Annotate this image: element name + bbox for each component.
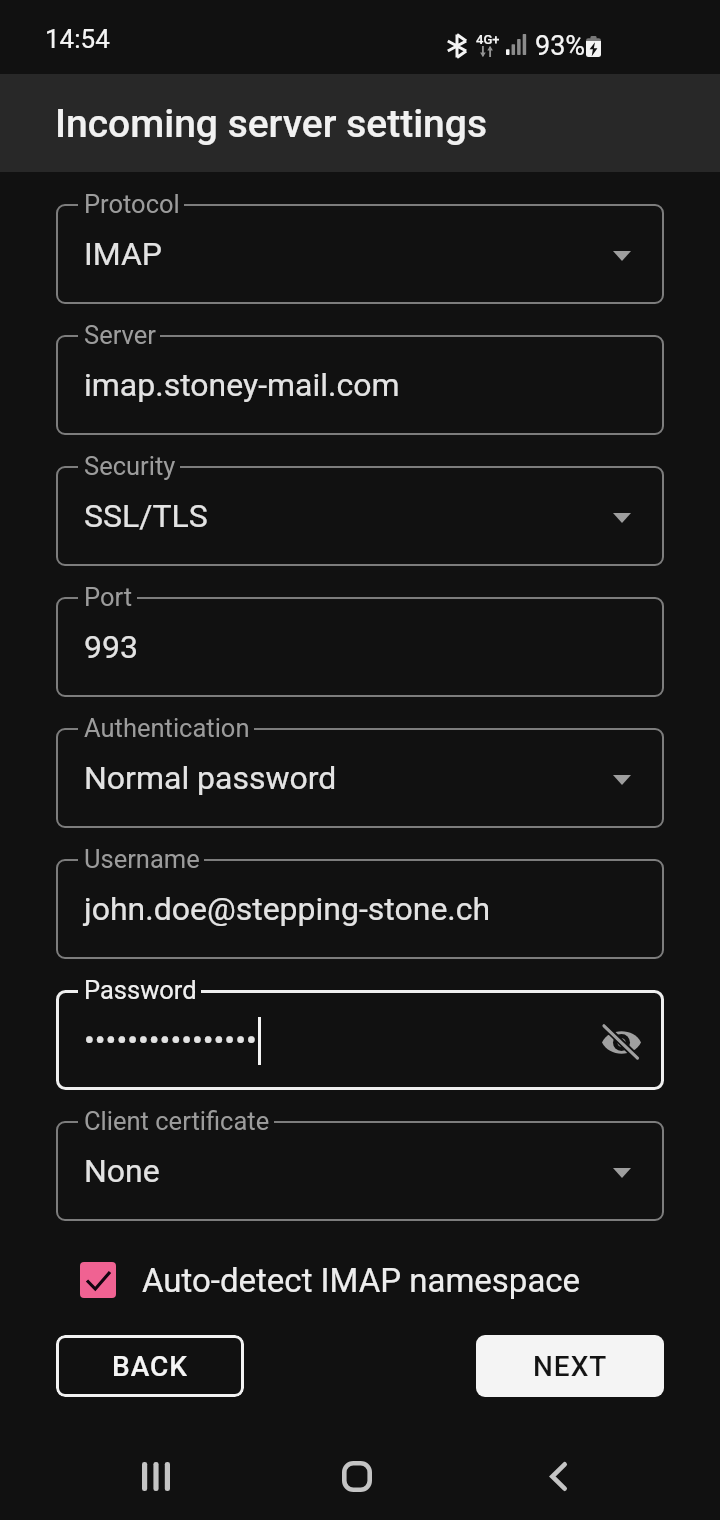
staticText: john.doe@stepping-stone.ch (84, 890, 491, 928)
staticText: 14:54 (45, 24, 110, 54)
staticText: Incoming server settings (55, 101, 487, 147)
staticText: Normal password (84, 759, 337, 797)
button[interactable]: Show password (587, 1008, 656, 1077)
staticText: imap.stoney-mail.com (84, 366, 400, 404)
staticText: Port (84, 582, 133, 612)
staticText: SSL/TLS (84, 497, 208, 535)
button[interactable]: Security (84, 451, 176, 481)
button[interactable]: Auto-detect IMAP namespace (80, 1254, 581, 1306)
button[interactable]: SSL/TLS (56, 466, 664, 566)
staticText: Client certificate (84, 1106, 270, 1136)
staticText: 4G+ (476, 32, 500, 47)
staticText: Server (84, 320, 156, 350)
button[interactable]: Server (84, 320, 156, 350)
staticText: Password (84, 975, 197, 1005)
staticText: NEXT (533, 1350, 608, 1383)
button[interactable]: Home (281, 1432, 433, 1520)
button[interactable]: imap.stoney-mail.com (56, 335, 664, 435)
staticText: •••••••••••••••• (84, 1021, 257, 1059)
button[interactable]: john.doe@stepping-stone.ch (56, 859, 664, 959)
button[interactable]: Recent apps (80, 1432, 232, 1520)
button[interactable]: Normal password (56, 728, 664, 828)
staticText: IMAP (84, 235, 162, 273)
button[interactable]: IMAP (56, 204, 664, 304)
button[interactable]: •••••••••••••••• (56, 990, 664, 1090)
staticText: Username (84, 844, 200, 874)
button[interactable]: None (56, 1121, 664, 1221)
button[interactable]: Port (84, 582, 133, 612)
staticText: BACK (112, 1350, 189, 1383)
staticText: None (84, 1152, 160, 1190)
staticText: 993 (84, 628, 138, 666)
button[interactable]: Client certificate (84, 1106, 270, 1136)
button[interactable]: Username (84, 844, 200, 874)
staticText: Protocol (84, 189, 180, 219)
button[interactable]: Back (482, 1432, 634, 1520)
button[interactable]: BACK (56, 1335, 244, 1397)
button[interactable]: 993 (56, 597, 664, 697)
button[interactable]: Password (84, 975, 197, 1005)
button[interactable]: Protocol (84, 189, 180, 219)
button[interactable]: NEXT (476, 1335, 664, 1397)
staticText: Authentication (84, 713, 250, 743)
staticText: 93% (535, 30, 586, 62)
staticText: Auto-detect IMAP namespace (142, 1261, 581, 1300)
staticText: Security (84, 451, 176, 481)
button[interactable]: Authentication (84, 713, 250, 743)
